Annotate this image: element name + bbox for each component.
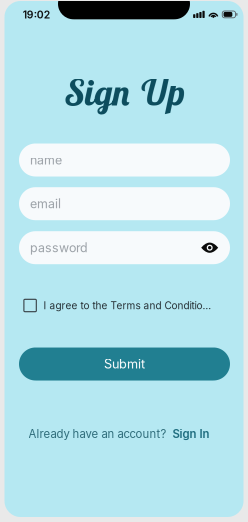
button[interactable]: email (19, 187, 230, 220)
staticText: Sign In (172, 427, 209, 441)
button[interactable]: password (19, 231, 230, 264)
staticText: Submit (104, 356, 145, 372)
staticText: Already have an account? (28, 427, 166, 441)
button[interactable]: Sign In (172, 427, 209, 441)
staticText: Sign Up (65, 69, 184, 114)
staticText: 19:02 (23, 8, 50, 21)
staticText: password (30, 240, 88, 255)
button[interactable]: Submit (19, 347, 230, 380)
button[interactable]: I agree to the Terms and Conditions (24, 295, 220, 315)
staticText: email (30, 196, 61, 211)
staticText: I agree to the Terms and Conditions (44, 299, 213, 312)
staticText: name (30, 152, 62, 167)
button[interactable]: name (19, 143, 230, 176)
